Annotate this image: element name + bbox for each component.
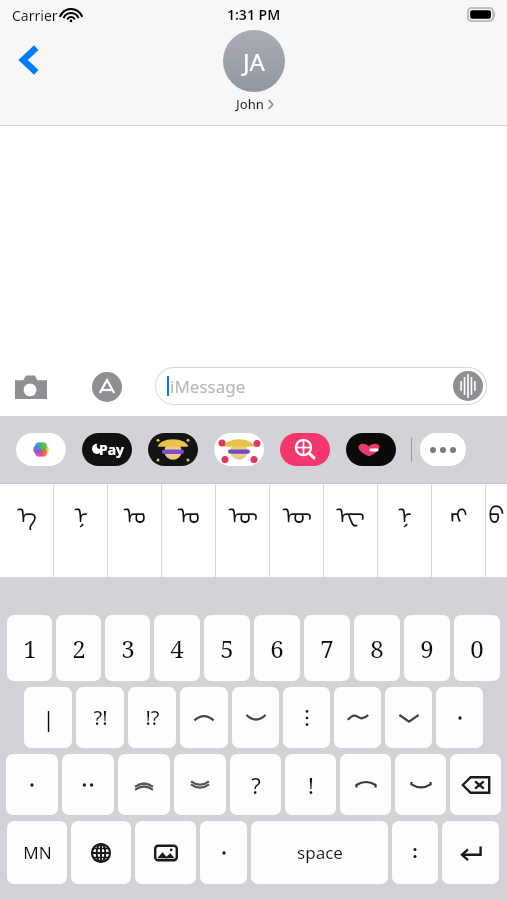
button[interactable]: 9 xyxy=(404,615,450,681)
button[interactable]: Record audio xyxy=(452,370,484,402)
button[interactable]: Key dot xyxy=(200,821,247,884)
button[interactable]: iMessage xyxy=(155,367,487,405)
button[interactable]: ᠤ xyxy=(162,483,215,577)
button[interactable]: 5 xyxy=(204,615,250,681)
staticText: ᠩ xyxy=(450,489,468,531)
button[interactable]: Camera xyxy=(10,366,52,408)
staticText: 4 xyxy=(170,632,184,665)
button[interactable]: ᠡ xyxy=(0,483,53,577)
staticText: | xyxy=(42,703,55,733)
staticText: ? xyxy=(251,770,261,800)
button[interactable]: Key dblcaret-dn xyxy=(174,754,226,815)
staticText: ᠡ xyxy=(17,489,37,531)
staticText: 1:31 PM xyxy=(227,5,281,24)
staticText: ᠥ xyxy=(228,489,258,531)
button[interactable]: 0 xyxy=(454,615,500,681)
button[interactable]: More apps xyxy=(420,433,466,466)
button[interactable]: 6 xyxy=(254,615,300,681)
staticText: ?! xyxy=(93,704,108,731)
staticText: space xyxy=(297,841,343,864)
button[interactable]: ? xyxy=(230,754,281,815)
button[interactable]: Key arc-dn xyxy=(232,687,279,748)
button[interactable]: 3 xyxy=(105,615,150,681)
button[interactable]: Key dblcaret-up xyxy=(118,754,170,815)
button[interactable]: !? xyxy=(128,687,176,748)
button[interactable]: Key tri-dots xyxy=(283,687,330,748)
button[interactable]: 8 xyxy=(354,615,400,681)
button[interactable]: ᠦ xyxy=(270,483,323,577)
staticText: ᠣ xyxy=(123,489,146,531)
button[interactable]: ! xyxy=(285,754,336,815)
button[interactable]: 2 xyxy=(56,615,101,681)
button[interactable]: ᠪ xyxy=(486,483,507,577)
staticText: 0 xyxy=(470,632,484,665)
button[interactable]: Back xyxy=(8,38,52,82)
button[interactable]: JA xyxy=(223,30,285,113)
staticText: ᠦ xyxy=(282,489,312,531)
staticText: Carrier xyxy=(12,6,58,25)
staticText: iMessage xyxy=(170,375,246,398)
button[interactable]: iMessage app xyxy=(214,433,264,466)
button[interactable]: ᠥ xyxy=(216,483,269,577)
staticText: John xyxy=(236,95,265,113)
button[interactable]: ᠨ xyxy=(378,483,431,577)
button[interactable]: iMessage app xyxy=(16,433,66,466)
button[interactable]: Key arc-up xyxy=(180,687,228,748)
staticText: ᠧ xyxy=(336,489,365,531)
staticText: 6 xyxy=(270,632,284,665)
button[interactable]: iMessage app xyxy=(280,433,330,466)
staticText: 8 xyxy=(370,632,384,665)
button[interactable]: 1 xyxy=(7,615,52,681)
button[interactable]: Key twodots xyxy=(62,754,114,815)
staticText: ᠨ xyxy=(73,489,88,531)
button[interactable]: ᠣ xyxy=(108,483,161,577)
staticText: 5 xyxy=(220,632,234,665)
staticText: Pay xyxy=(99,440,125,459)
button[interactable]: Key colon xyxy=(392,821,438,884)
staticText: ᠨ xyxy=(397,489,412,531)
button[interactable]: Key tilde-dn xyxy=(385,687,432,748)
button[interactable]: 7 xyxy=(304,615,350,681)
staticText: !? xyxy=(145,704,160,731)
button[interactable]: Key tilde-up xyxy=(334,687,381,748)
button[interactable]: space xyxy=(251,821,388,884)
button[interactable]: iMessage app xyxy=(82,433,132,466)
staticText: 1 xyxy=(23,632,37,665)
button[interactable]: Key dot xyxy=(436,687,483,748)
staticText: 3 xyxy=(121,632,135,665)
button[interactable]: ᠨ xyxy=(54,483,107,577)
button[interactable]: Key cap-dn xyxy=(395,754,446,815)
staticText: ᠪ xyxy=(488,489,505,531)
button[interactable]: MN xyxy=(7,821,67,884)
button[interactable]: iMessage app xyxy=(346,433,396,466)
button[interactable]: 4 xyxy=(154,615,200,681)
staticText: JA xyxy=(243,45,265,78)
button[interactable]: ᠧ xyxy=(324,483,377,577)
button[interactable]: ᠩ xyxy=(432,483,485,577)
button[interactable]: Key dot xyxy=(6,754,58,815)
staticText: ! xyxy=(308,770,314,800)
button[interactable]: Change keyboard xyxy=(71,821,131,884)
button[interactable]: Return xyxy=(442,821,499,884)
staticText: 9 xyxy=(420,632,434,665)
staticText: MN xyxy=(23,841,52,864)
staticText: ᠤ xyxy=(177,489,200,531)
button[interactable]: Insert image xyxy=(135,821,196,884)
button[interactable]: Delete xyxy=(450,754,501,815)
button[interactable]: | xyxy=(24,687,72,748)
button[interactable]: Key cap-up xyxy=(340,754,391,815)
staticText: 7 xyxy=(320,632,334,665)
button[interactable]: Apps xyxy=(86,366,128,408)
button[interactable]: iMessage app xyxy=(148,433,198,466)
button[interactable]: ?! xyxy=(76,687,124,748)
staticText: 2 xyxy=(72,632,86,665)
